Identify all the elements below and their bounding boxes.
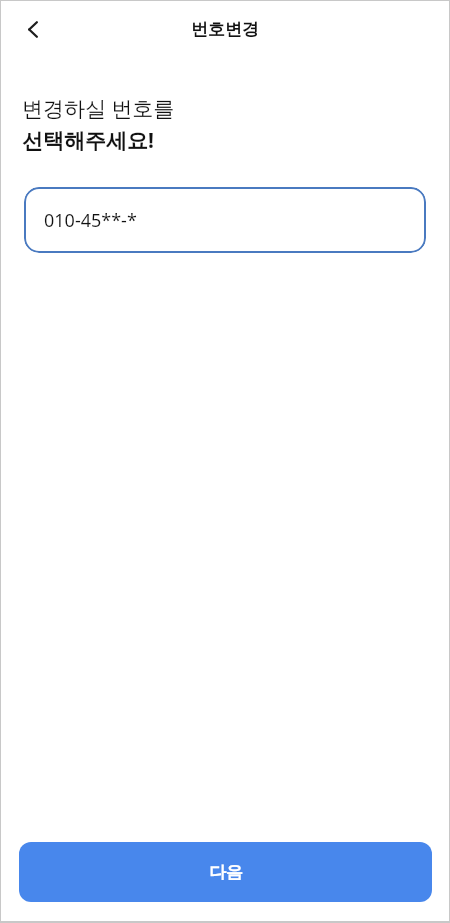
staticText: 010-45**-* — [44, 208, 137, 233]
staticText: 번호변경 — [191, 19, 259, 40]
staticText: 변경하실 번호를 — [22, 94, 175, 123]
staticText: 선택해주세요! — [22, 126, 154, 155]
button[interactable]: 다음 — [19, 842, 432, 902]
button[interactable]: Back — [13, 9, 53, 49]
staticText: 다음 — [209, 862, 243, 883]
button[interactable]: 010-45**-* — [24, 187, 426, 253]
